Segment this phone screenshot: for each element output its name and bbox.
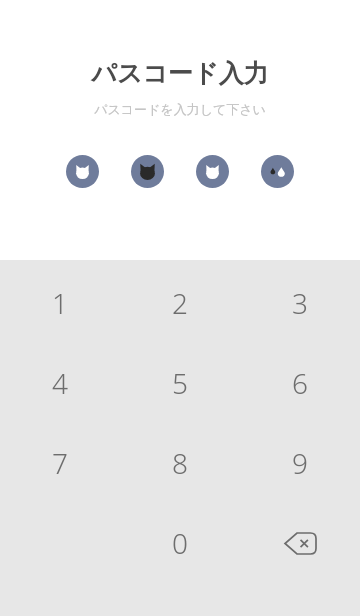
button[interactable]: 2 [120,263,240,343]
staticText: パスコード入力 [91,58,269,89]
staticText: 6 [292,364,308,402]
staticText: 8 [172,444,188,482]
button[interactable]: 4 [0,343,120,423]
button[interactable]: Entered passcode character [131,155,164,188]
button[interactable]: Entered passcode character [66,155,99,188]
staticText: 9 [292,444,308,482]
staticText: 4 [52,364,68,402]
button[interactable]: 6 [240,343,360,423]
button[interactable]: 5 [120,343,240,423]
button[interactable]: 1 [0,263,120,343]
button[interactable]: 8 [120,423,240,503]
button[interactable]: 0 [120,503,240,583]
button[interactable]: 7 [0,423,120,503]
staticText: 7 [52,444,68,482]
button[interactable]: 9 [240,423,360,503]
staticText: パスコードを入力して下さい [94,101,266,117]
staticText: 3 [292,284,308,322]
button[interactable]: Delete [240,503,360,583]
button[interactable]: Entered passcode character [261,155,294,188]
staticText: 2 [172,284,188,322]
staticText: 1 [52,284,68,322]
button[interactable]: 3 [240,263,360,343]
staticText: 5 [172,364,188,402]
staticText: 0 [172,524,188,562]
button[interactable]: Entered passcode character [196,155,229,188]
